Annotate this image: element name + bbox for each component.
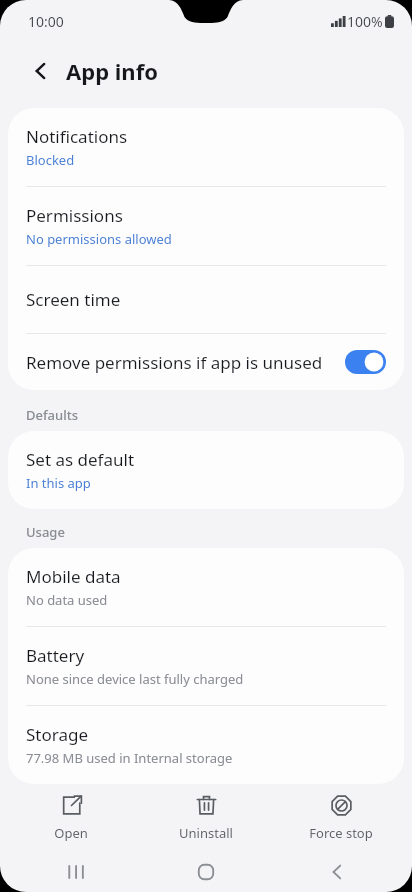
button[interactable]: Back — [22, 52, 60, 90]
staticText: Mobile data — [26, 565, 121, 588]
staticText: Battery — [26, 644, 85, 667]
staticText: Set as default — [26, 448, 135, 471]
staticText: Notifications — [26, 125, 128, 148]
button[interactable]: Mobile data — [8, 548, 404, 626]
button[interactable]: Back — [282, 852, 392, 892]
staticText: 77.98 MB used in Internal storage — [26, 749, 233, 767]
button[interactable]: Set as default — [8, 431, 404, 509]
button[interactable]: Storage — [8, 706, 404, 784]
button[interactable]: Battery — [8, 627, 404, 705]
staticText: Screen time — [26, 288, 121, 311]
button[interactable]: Recent apps — [21, 852, 131, 892]
staticText: 10:00 — [28, 12, 64, 31]
staticText: No permissions allowed — [26, 230, 172, 248]
button[interactable]: Remove permissions if app is unused — [8, 334, 404, 390]
staticText: Open — [54, 824, 88, 842]
staticText: 100% — [347, 12, 383, 31]
staticText: Force stop — [309, 824, 373, 842]
staticText: Uninstall — [179, 824, 233, 842]
staticText: Storage — [26, 723, 89, 746]
staticText: Remove permissions if app is unused — [26, 351, 337, 374]
button[interactable]: Uninstall — [142, 788, 270, 848]
button[interactable]: Notifications — [8, 108, 404, 186]
button[interactable]: Permissions — [8, 187, 404, 265]
staticText: Blocked — [26, 151, 75, 169]
staticText: Defaults — [26, 406, 79, 424]
staticText: Usage — [26, 523, 65, 541]
button[interactable]: Force stop — [277, 788, 405, 848]
staticText: No data used — [26, 591, 108, 609]
button[interactable]: Home — [151, 852, 261, 892]
staticText: In this app — [26, 474, 91, 492]
staticText: None since device last fully charged — [26, 670, 244, 688]
button[interactable]: Screen time — [8, 266, 404, 333]
staticText: App info — [66, 56, 158, 86]
staticText: Permissions — [26, 204, 123, 227]
button[interactable]: Open — [7, 788, 135, 848]
